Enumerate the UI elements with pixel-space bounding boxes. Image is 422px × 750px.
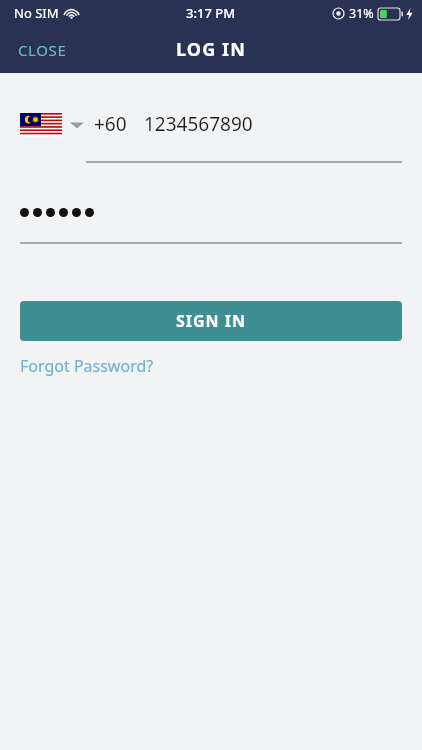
staticText: SIGN IN [176, 310, 247, 332]
staticText: CLOSE [18, 40, 67, 60]
button[interactable]: Select country code [18, 109, 86, 140]
button[interactable]: CLOSE [0, 32, 85, 68]
staticText: Forgot Password? [20, 355, 154, 377]
staticText: 3:17 PM [186, 4, 236, 22]
staticText: 31% [349, 5, 374, 22]
staticText: +60 [94, 111, 127, 137]
staticText: 1234567890 [144, 111, 253, 137]
staticText: No SIM [14, 4, 59, 22]
button[interactable]: SIGN IN [20, 301, 402, 341]
staticText: LOG IN [176, 37, 246, 62]
button[interactable]: Forgot Password? [20, 353, 154, 379]
